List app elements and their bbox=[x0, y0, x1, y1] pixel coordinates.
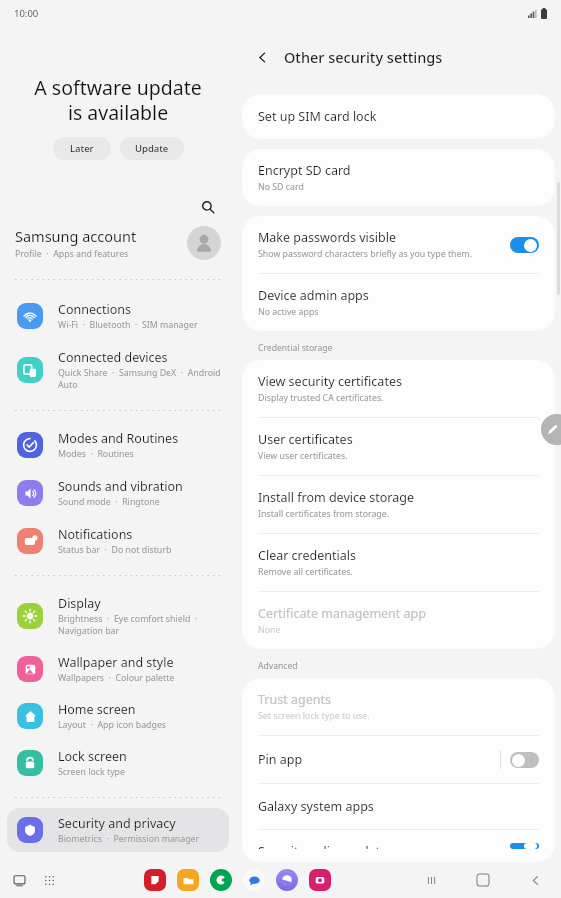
button[interactable]: Notifications bbox=[7, 519, 229, 563]
staticText: 10:00 bbox=[14, 7, 39, 20]
button[interactable]: All apps bbox=[38, 869, 60, 891]
button[interactable]: Clear credentials bbox=[242, 534, 555, 591]
staticText: View security certificates bbox=[258, 373, 402, 390]
staticText: Install certificates from storage. bbox=[258, 508, 390, 520]
button[interactable]: Certificate management app bbox=[242, 592, 555, 649]
staticText: Biometrics · Permission manager bbox=[58, 833, 200, 845]
staticText: Remove all certificates. bbox=[258, 566, 353, 578]
button[interactable]: Connected devices bbox=[7, 342, 229, 398]
button[interactable]: Recents bbox=[8, 869, 30, 891]
staticText: Other security settings bbox=[284, 47, 443, 67]
staticText: Modes and Routines bbox=[58, 430, 179, 447]
staticText: Quick Share · Samsung DeX · Android Auto bbox=[58, 367, 221, 391]
staticText: Galaxy system apps bbox=[258, 798, 374, 815]
staticText: Notifications bbox=[58, 526, 133, 543]
staticText: No SD card bbox=[258, 181, 304, 193]
button[interactable]: Home bbox=[467, 864, 499, 896]
button[interactable]: Encrypt SD card bbox=[242, 149, 555, 206]
button[interactable]: Edit bbox=[541, 414, 561, 445]
button[interactable]: My Files bbox=[177, 869, 199, 891]
button[interactable]: Internet bbox=[276, 869, 298, 891]
staticText: Screen lock type bbox=[58, 766, 125, 778]
staticText: Security and privacy bbox=[58, 815, 176, 832]
staticText: Brightness · Eye comfort shield · Naviga… bbox=[58, 613, 198, 637]
button[interactable]: Recent apps bbox=[415, 864, 447, 896]
button[interactable]: Back bbox=[519, 864, 551, 896]
button[interactable]: Search bbox=[197, 196, 219, 218]
staticText: Profile · Apps and features bbox=[15, 248, 129, 260]
staticText: Status bar · Do not disturb bbox=[58, 544, 172, 556]
button[interactable]: Lock screen bbox=[7, 741, 229, 785]
staticText: Certificate management app bbox=[258, 605, 426, 622]
staticText: Lock screen bbox=[58, 748, 127, 765]
button[interactable]: Update bbox=[120, 137, 184, 160]
button[interactable]: User certificates bbox=[242, 418, 555, 475]
staticText: No active apps bbox=[258, 306, 319, 318]
staticText: Display trusted CA certificates. bbox=[258, 392, 384, 404]
staticText: Wallpapers · Colour palette bbox=[58, 672, 175, 684]
staticText: Pin app bbox=[258, 751, 303, 768]
staticText: Set screen lock type to use. bbox=[258, 710, 370, 722]
staticText: None bbox=[258, 624, 281, 636]
button[interactable]: Trust agents bbox=[242, 678, 555, 735]
staticText: A software update is available bbox=[0, 74, 236, 126]
button[interactable]: Messages bbox=[243, 869, 265, 891]
button[interactable]: View security certificates bbox=[242, 360, 555, 417]
staticText: View user certificates. bbox=[258, 450, 348, 462]
staticText: Home screen bbox=[58, 701, 136, 718]
button[interactable]: Pin app bbox=[242, 736, 555, 783]
button[interactable]: Security and privacy bbox=[7, 808, 229, 852]
staticText: Connections bbox=[58, 301, 131, 318]
staticText: Set up SIM card lock bbox=[258, 108, 377, 125]
staticText: Install from device storage bbox=[258, 489, 414, 506]
staticText: Sounds and vibration bbox=[58, 478, 183, 495]
staticText: Later bbox=[70, 142, 94, 155]
staticText: Advanced bbox=[258, 660, 298, 672]
button[interactable]: Device admin apps bbox=[242, 274, 555, 331]
staticText: Wi-Fi · Bluetooth · SIM manager bbox=[58, 319, 198, 331]
staticText: Trust agents bbox=[258, 691, 331, 708]
button[interactable]: Set up SIM card lock bbox=[242, 94, 555, 139]
button[interactable]: Install from device storage bbox=[242, 476, 555, 533]
button[interactable]: Make passwords visible bbox=[242, 216, 555, 273]
staticText: Connected devices bbox=[58, 349, 168, 366]
button[interactable]: Security policy updates bbox=[242, 830, 555, 862]
button[interactable]: Display bbox=[7, 588, 229, 644]
staticText: Make passwords visible bbox=[258, 229, 396, 246]
staticText: Display bbox=[58, 595, 101, 612]
staticText: User certificates bbox=[258, 431, 353, 448]
staticText: Encrypt SD card bbox=[258, 162, 351, 179]
button[interactable]: Galaxy system apps bbox=[242, 784, 555, 829]
button[interactable]: Back bbox=[250, 45, 274, 69]
staticText: Device admin apps bbox=[258, 287, 369, 304]
button[interactable]: Home screen bbox=[7, 694, 229, 738]
staticText: Update bbox=[135, 142, 169, 155]
staticText: Sound mode · Ringtone bbox=[58, 496, 160, 508]
button[interactable]: Modes and Routines bbox=[7, 423, 229, 467]
staticText: Modes · Routines bbox=[58, 448, 134, 460]
button[interactable]: Sounds and vibration bbox=[7, 471, 229, 515]
staticText: Security policy updates bbox=[258, 843, 394, 849]
button[interactable]: Phone bbox=[210, 869, 232, 891]
staticText: Show password characters briefly as you … bbox=[258, 248, 473, 260]
button[interactable]: Samsung account bbox=[0, 224, 236, 262]
button[interactable]: Camera bbox=[309, 869, 331, 891]
staticText: Wallpaper and style bbox=[58, 654, 174, 671]
button[interactable]: Samsung Notes bbox=[144, 869, 166, 891]
button[interactable]: Connections bbox=[7, 294, 229, 338]
staticText: Credential storage bbox=[258, 342, 333, 354]
button[interactable]: Wallpaper and style bbox=[7, 647, 229, 691]
staticText: Layout · App icon badges bbox=[58, 719, 167, 731]
staticText: Samsung account bbox=[15, 226, 137, 246]
button[interactable]: Later bbox=[53, 137, 111, 160]
staticText: Clear credentials bbox=[258, 547, 356, 564]
